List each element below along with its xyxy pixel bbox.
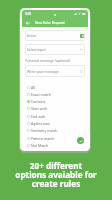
- staticText: Agains new: [31, 121, 50, 126]
- button[interactable]: Pattern match: [25, 135, 85, 142]
- staticText: Start with: [31, 106, 47, 111]
- staticText: Active: [27, 33, 37, 38]
- button[interactable]: Toggle active: [80, 34, 84, 38]
- button[interactable]: All: [25, 84, 85, 91]
- button[interactable]: Exact match: [25, 91, 85, 98]
- staticText: Select input: [27, 47, 46, 52]
- button[interactable]: Contains: [25, 98, 85, 105]
- button[interactable]: Write your message: [25, 65, 85, 77]
- staticText: Similarity match: [31, 128, 58, 133]
- staticText: Exact match: [31, 92, 51, 97]
- staticText: Pattern match: [31, 136, 55, 141]
- staticText: End with: [31, 114, 46, 119]
- staticText: Contains: [31, 99, 46, 104]
- staticText: New Rule: Request: [35, 20, 65, 25]
- button[interactable]: Back: [24, 19, 32, 27]
- staticText: Not Match: [31, 143, 49, 148]
- button[interactable]: Save rule: [77, 137, 84, 144]
- button[interactable]: Similarity match: [25, 127, 85, 134]
- staticText: 20+ different options avaiable for creat…: [0, 160, 112, 190]
- staticText: All: [31, 85, 36, 90]
- button[interactable]: Active: [25, 30, 85, 41]
- button[interactable]: Not Match: [25, 142, 85, 149]
- staticText: Personal message (optional): [25, 58, 71, 63]
- button[interactable]: Agains new: [25, 120, 85, 127]
- button[interactable]: Select input: [25, 44, 85, 55]
- staticText: 9:41: [25, 12, 32, 16]
- button[interactable]: End with: [25, 113, 85, 120]
- button[interactable]: Start with: [25, 105, 85, 112]
- staticText: Write your message: [27, 69, 59, 74]
